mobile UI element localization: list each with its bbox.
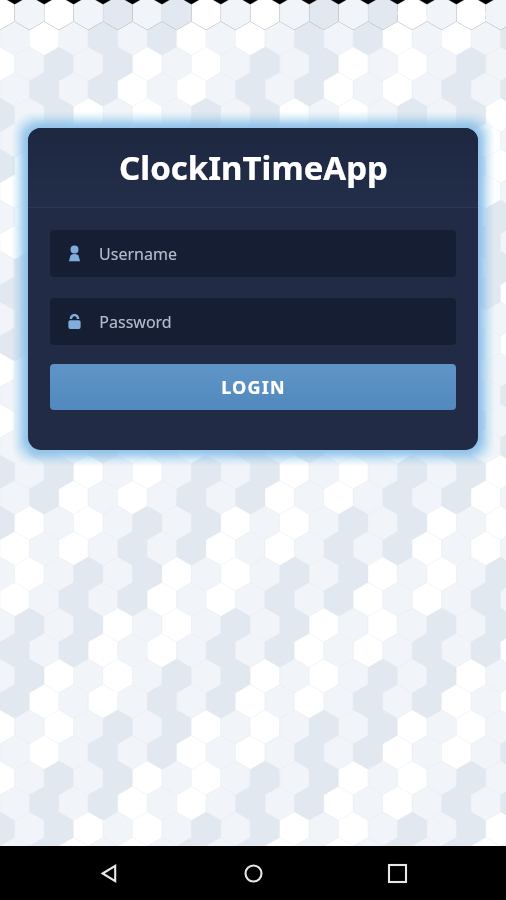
staticText: Password <box>99 311 172 333</box>
button[interactable]: LOGIN <box>50 364 456 410</box>
button[interactable]: Home <box>218 846 288 900</box>
button[interactable]: Recent apps <box>362 846 432 900</box>
button[interactable]: Back <box>74 846 144 900</box>
button[interactable]: Password <box>50 298 456 345</box>
staticText: LOGIN <box>221 375 286 400</box>
staticText: 12:29 <box>457 5 496 25</box>
staticText: ClockInTimeApp <box>119 145 388 190</box>
staticText: Username <box>99 243 177 265</box>
button[interactable]: Username <box>50 230 456 277</box>
